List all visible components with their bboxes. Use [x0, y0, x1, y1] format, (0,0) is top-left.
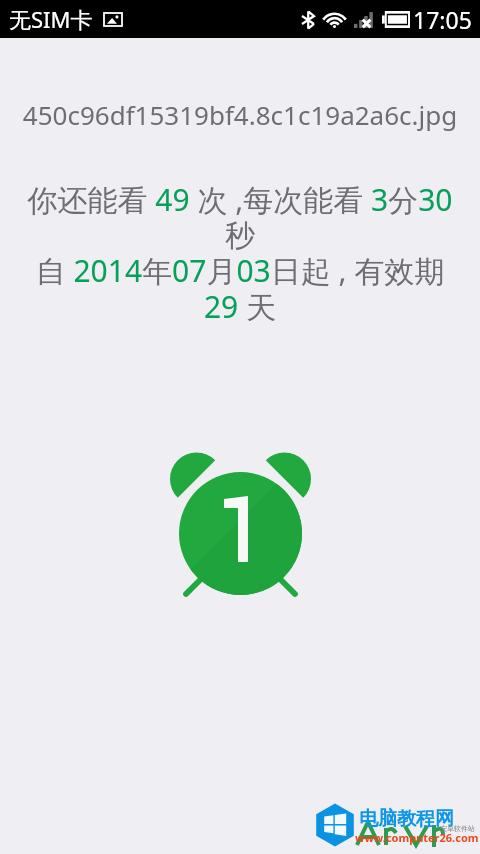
staticText: 电脑教程网 — [359, 807, 454, 831]
staticText: 17:05 — [413, 4, 472, 35]
staticText: 450c96df15319bf4.8c1c19a2a6c.jpg — [0, 97, 480, 132]
staticText: 你还能看 49 次 ,每次能看 3分30秒 自 2014年07月03日起 , 有… — [24, 179, 456, 327]
button[interactable]: Alarm clock timer — [167, 447, 313, 601]
staticText: 安卓软件站 — [440, 824, 475, 833]
button[interactable]: 450c96df15319bf4.8c1c19a2a6c.jpg — [0, 97, 480, 132]
staticText: www.computer26.com — [355, 830, 479, 845]
staticText: 无SIM卡 — [9, 4, 93, 34]
